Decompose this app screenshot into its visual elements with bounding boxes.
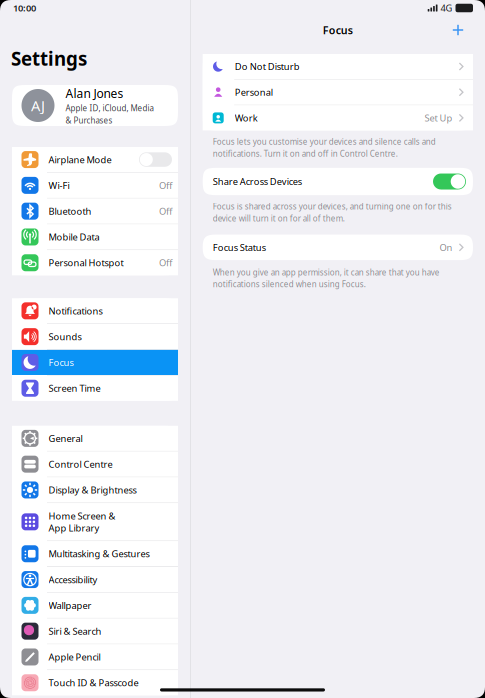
button[interactable]: Add Focus	[448, 20, 468, 40]
button[interactable]: Accessibility	[12, 567, 178, 592]
staticText: notifications. Turn it on and off in Con…	[213, 148, 398, 159]
button[interactable]: Screen Time	[12, 376, 178, 401]
button[interactable]: Focus Status	[203, 235, 473, 260]
staticText: 10:00	[13, 2, 36, 14]
button[interactable]: General	[12, 426, 178, 451]
staticText: Personal	[235, 86, 273, 98]
button[interactable]: Wallpaper	[12, 593, 178, 618]
staticText: Off	[159, 205, 172, 217]
staticText: Off	[159, 257, 172, 269]
staticText: Touch ID & Passcode	[48, 677, 138, 689]
staticText: Focus	[323, 23, 353, 37]
button[interactable]: Mobile Data	[12, 224, 178, 249]
staticText: Apple ID, iCloud, Media	[65, 103, 153, 113]
staticText: App Library	[48, 522, 99, 534]
staticText: Notifications	[48, 305, 102, 317]
button[interactable]: Siri & Search	[12, 619, 178, 644]
staticText: Focus	[48, 356, 73, 369]
staticText: Work	[235, 112, 258, 124]
staticText: Airplane Mode	[48, 153, 111, 166]
staticText: Focus Status	[213, 241, 266, 253]
staticText: Settings	[11, 46, 87, 71]
staticText: On	[439, 241, 452, 253]
staticText: Siri & Search	[48, 625, 101, 637]
staticText: Multitasking & Gestures	[48, 548, 149, 560]
staticText: Sounds	[48, 330, 81, 343]
button[interactable]: Control Centre	[12, 452, 178, 477]
button[interactable]: Sounds	[12, 324, 178, 349]
staticText: When you give an app permission, it can …	[213, 267, 440, 278]
staticText: Wallpaper	[48, 599, 91, 612]
button[interactable]: Personal Hotspot	[12, 250, 178, 275]
staticText: Focus is shared across your devices, and…	[213, 201, 452, 212]
staticText: Control Centre	[48, 458, 112, 470]
staticText: Set Up	[424, 112, 452, 124]
staticText: Alan Jones	[65, 85, 123, 101]
staticText: Bluetooth	[48, 205, 91, 217]
button[interactable]: Display & Brightness	[12, 477, 178, 502]
staticText: AJ	[31, 96, 45, 115]
button[interactable]: Focus	[12, 350, 178, 375]
staticText: device will turn it on for all of them.	[213, 213, 345, 224]
staticText: Apple Pencil	[48, 651, 100, 663]
button[interactable]: Wi-Fi	[12, 173, 178, 198]
staticText: Do Not Disturb	[235, 60, 300, 73]
button[interactable]: Home Screen &	[12, 503, 178, 540]
staticText: Display & Brightness	[48, 484, 136, 496]
staticText: Off	[159, 179, 172, 192]
button[interactable]: Notifications	[12, 298, 178, 323]
button[interactable]: Work	[203, 105, 473, 130]
button[interactable]: Personal	[203, 80, 473, 105]
staticText: & Purchases	[65, 115, 112, 126]
staticText: Accessibility	[48, 573, 97, 586]
staticText: Wi-Fi	[48, 179, 69, 192]
button[interactable]: Do Not Disturb	[203, 54, 473, 79]
staticText: Focus lets you customise your devices an…	[213, 136, 436, 147]
staticText: notifications silenced when using Focus.	[213, 279, 366, 289]
button[interactable]: Multitasking & Gestures	[12, 541, 178, 566]
button[interactable]: Airplane Mode	[12, 147, 178, 172]
button[interactable]: Apple Pencil	[12, 644, 178, 669]
button[interactable]: Bluetooth	[12, 199, 178, 224]
staticText: 4G	[440, 2, 452, 14]
staticText: Mobile Data	[48, 231, 99, 243]
staticText: Home Screen &	[48, 510, 115, 522]
staticText: Screen Time	[48, 382, 100, 394]
staticText: General	[48, 432, 82, 445]
staticText: Share Across Devices	[213, 175, 302, 188]
staticText: Personal Hotspot	[48, 257, 123, 269]
button[interactable]: AJ	[12, 85, 178, 126]
button[interactable]: Touch ID & Passcode	[12, 670, 178, 695]
